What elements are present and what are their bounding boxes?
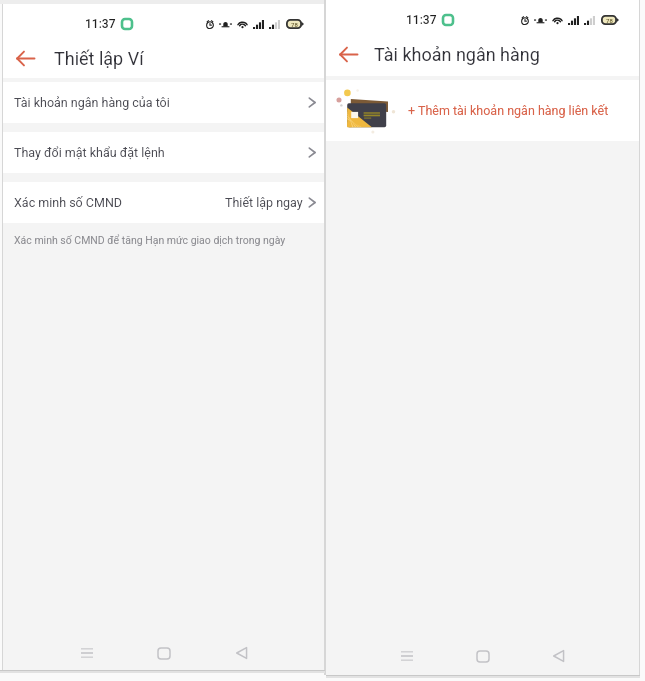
- staticText: 11:37: [406, 13, 437, 27]
- button[interactable]: Recent apps: [390, 637, 424, 675]
- staticText: 78: [291, 21, 298, 28]
- staticText: Xác minh số CMND để tăng Hạn mức giao dị…: [14, 234, 286, 246]
- button[interactable]: Back: [326, 33, 370, 76]
- button[interactable]: Tài khoản ngân hàng của tôi: [3, 82, 324, 123]
- button[interactable]: Home: [147, 636, 181, 670]
- button[interactable]: Back: [225, 636, 259, 670]
- button[interactable]: Back: [542, 637, 576, 675]
- button[interactable]: Home: [466, 637, 500, 675]
- staticText: Thiết lập ngay: [225, 195, 303, 210]
- staticText: Tài khoản ngân hàng: [374, 44, 540, 65]
- button[interactable]: Thay đổi mật khẩu đặt lệnh: [3, 132, 324, 173]
- staticText: + Thêm tài khoản ngân hàng liên kết: [408, 103, 609, 118]
- button[interactable]: Xác minh số CMND: [3, 182, 324, 223]
- staticText: Thiết lập Ví: [54, 48, 144, 69]
- staticText: 11:37: [85, 17, 116, 31]
- button[interactable]: + Thêm tài khoản ngân hàng liên kết: [326, 80, 639, 141]
- staticText: Thay đổi mật khẩu đặt lệnh: [14, 145, 165, 160]
- button[interactable]: Back: [3, 38, 47, 78]
- staticText: Xác minh số CMND: [14, 195, 123, 210]
- staticText: Tài khoản ngân hàng của tôi: [14, 95, 170, 110]
- button[interactable]: Recent apps: [70, 636, 104, 670]
- staticText: 78: [606, 17, 613, 24]
